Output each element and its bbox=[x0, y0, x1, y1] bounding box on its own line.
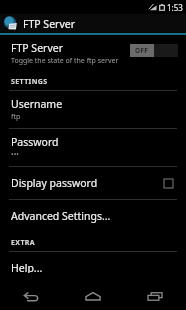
button[interactable]: Toggle FTP server bbox=[130, 44, 178, 57]
staticText: OFF bbox=[135, 46, 149, 55]
staticText: FTP Server bbox=[23, 17, 75, 31]
other: App icon bbox=[3, 16, 18, 31]
staticText: 1:53 bbox=[167, 2, 183, 13]
button[interactable]: Help... bbox=[0, 252, 186, 282]
button[interactable]: FTP Server bbox=[0, 35, 186, 71]
staticText: Username bbox=[11, 97, 63, 111]
staticText: ftp bbox=[11, 112, 21, 122]
button[interactable]: Password bbox=[0, 129, 186, 166]
staticText: FTP Server bbox=[11, 41, 63, 55]
staticText: Password bbox=[11, 135, 59, 149]
button[interactable]: Recent apps bbox=[124, 282, 186, 310]
staticText: Help... bbox=[11, 261, 43, 273]
button[interactable]: Username bbox=[0, 91, 186, 128]
staticText: SETTINGS bbox=[11, 77, 48, 87]
staticText: Toggle the state of the ftp server bbox=[11, 56, 119, 66]
staticText: EXTRA bbox=[11, 238, 36, 248]
button[interactable]: Back bbox=[0, 282, 62, 310]
button[interactable]: Home bbox=[62, 282, 124, 310]
button[interactable]: Advanced Settings... bbox=[0, 200, 186, 232]
staticText: Advanced Settings... bbox=[11, 209, 111, 223]
button[interactable]: Display password bbox=[0, 167, 186, 199]
staticText: ••• bbox=[11, 150, 19, 160]
staticText: Display password bbox=[11, 176, 98, 190]
